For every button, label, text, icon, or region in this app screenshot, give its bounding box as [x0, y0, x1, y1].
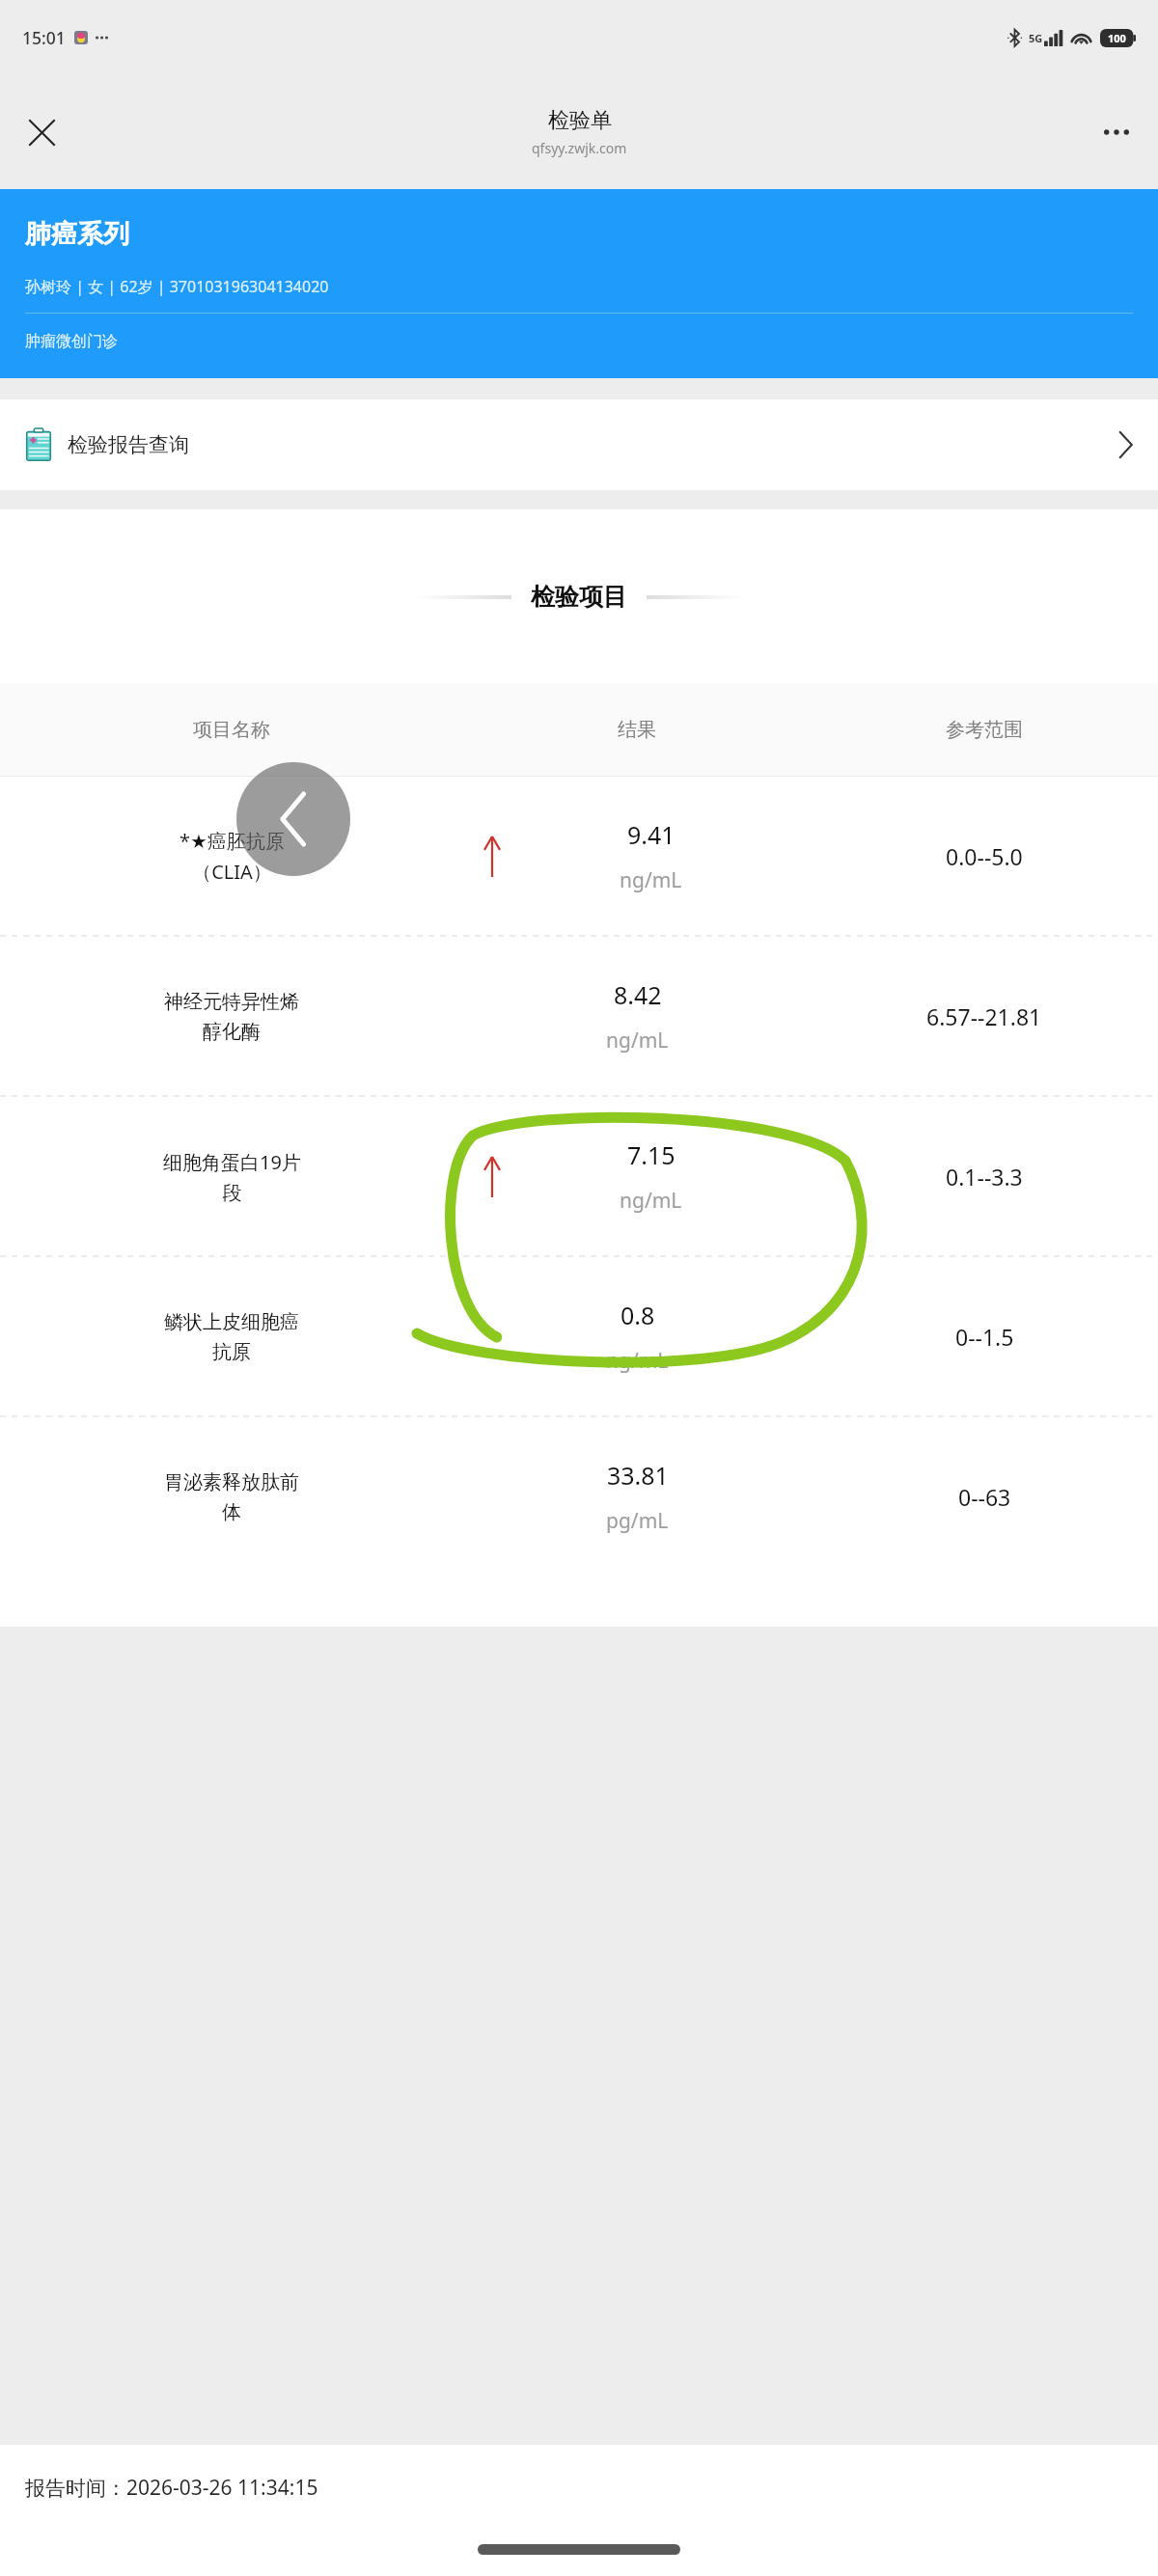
staticText: 9.41 [627, 818, 675, 851]
button[interactable]: 检验报告查询 [0, 399, 1158, 490]
button[interactable]: 胃泌素释放肽前 体 [0, 1417, 1158, 1576]
button[interactable]: 鳞状上皮细胞癌 抗原 [0, 1257, 1158, 1416]
staticText: 0.8 [620, 1299, 655, 1331]
button[interactable]: 神经元特异性烯 醇化酶 [0, 937, 1158, 1096]
staticText: ng/mL [606, 1027, 669, 1055]
button[interactable]: Close [14, 104, 69, 160]
staticText: 0.1--3.3 [946, 1162, 1023, 1192]
staticText: 肿瘤微创门诊 [25, 332, 118, 351]
staticText: 8.42 [614, 978, 662, 1011]
staticText: ng/mL [620, 866, 682, 894]
staticText: 6.57--21.81 [926, 1001, 1042, 1031]
staticText: 结果 [618, 718, 656, 742]
staticText: 肺癌系列 [25, 218, 129, 251]
staticText: 参考范围 [946, 718, 1023, 742]
staticText: qfsyy.zwjk.com [532, 139, 627, 157]
staticText: 0--1.5 [955, 1322, 1014, 1352]
staticText: 15:01 [22, 26, 66, 49]
button[interactable]: 细胞角蛋白19片 段 [0, 1097, 1158, 1256]
staticText: 项目名称 [193, 718, 270, 742]
staticText: ng/mL [606, 1347, 669, 1375]
staticText: 检验项目 [531, 582, 627, 612]
staticText: ng/mL [620, 1187, 682, 1215]
button[interactable]: *★癌胚抗原 （CLIA） [0, 777, 1158, 936]
staticText: 0.0--5.0 [946, 841, 1023, 871]
staticText: 神经元特异性烯 醇化酶 [164, 990, 299, 1044]
staticText: 检验单 [548, 107, 612, 134]
staticText: 33.81 [607, 1459, 669, 1492]
staticText: 100 [1108, 31, 1126, 45]
staticText: 细胞角蛋白19片 段 [163, 1149, 301, 1205]
staticText: 孙树玲 | 女 | 62岁 | 370103196304134020 [25, 276, 329, 297]
staticText: pg/mL [606, 1507, 669, 1535]
staticText: 0--63 [958, 1482, 1011, 1512]
staticText: 5G [1029, 31, 1043, 45]
staticText: 7.15 [627, 1138, 675, 1171]
staticText: 检验报告查询 [68, 432, 189, 457]
button[interactable]: More options [1089, 104, 1144, 160]
button[interactable]: Back [236, 762, 350, 876]
staticText: *★癌胚抗原 （CLIA） [179, 828, 285, 885]
staticText: 报告时间：2026-03-26 11:34:15 [25, 2474, 318, 2502]
staticText: 鳞状上皮细胞癌 抗原 [164, 1310, 299, 1364]
staticText: 胃泌素释放肽前 体 [164, 1470, 299, 1524]
